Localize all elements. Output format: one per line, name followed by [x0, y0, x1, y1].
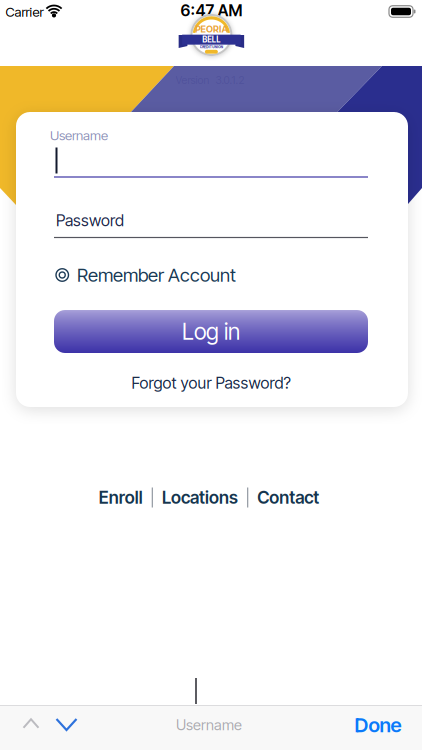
button[interactable]: Locations [162, 487, 238, 508]
staticText: PEORIA [178, 12, 244, 34]
button[interactable] [54, 712, 78, 736]
button[interactable]: Log in [54, 310, 368, 353]
button[interactable]: Enroll [99, 487, 143, 508]
button[interactable]: Done [354, 713, 401, 737]
button[interactable] [19, 711, 43, 735]
staticText: Username [50, 128, 108, 143]
staticText: BELL [193, 35, 230, 54]
staticText: Locations [162, 487, 238, 508]
staticText: Carrier [5, 4, 43, 20]
staticText: Remember Account [77, 264, 236, 286]
staticText: Password [56, 211, 124, 230]
staticText: CREDIT UNION [188, 55, 235, 63]
button[interactable]: Contact [257, 487, 319, 508]
staticText: Forgot your Password? [131, 374, 290, 392]
staticText: Log in [182, 318, 240, 345]
staticText: 6:47 AM [180, 1, 242, 20]
button[interactable]: Forgot your Password? [131, 374, 290, 392]
staticText: Contact [257, 487, 319, 508]
staticText: Done [354, 713, 401, 737]
staticText: Username [176, 716, 242, 734]
staticText: Enroll [99, 487, 143, 508]
button[interactable]: Remember Account [56, 264, 236, 286]
